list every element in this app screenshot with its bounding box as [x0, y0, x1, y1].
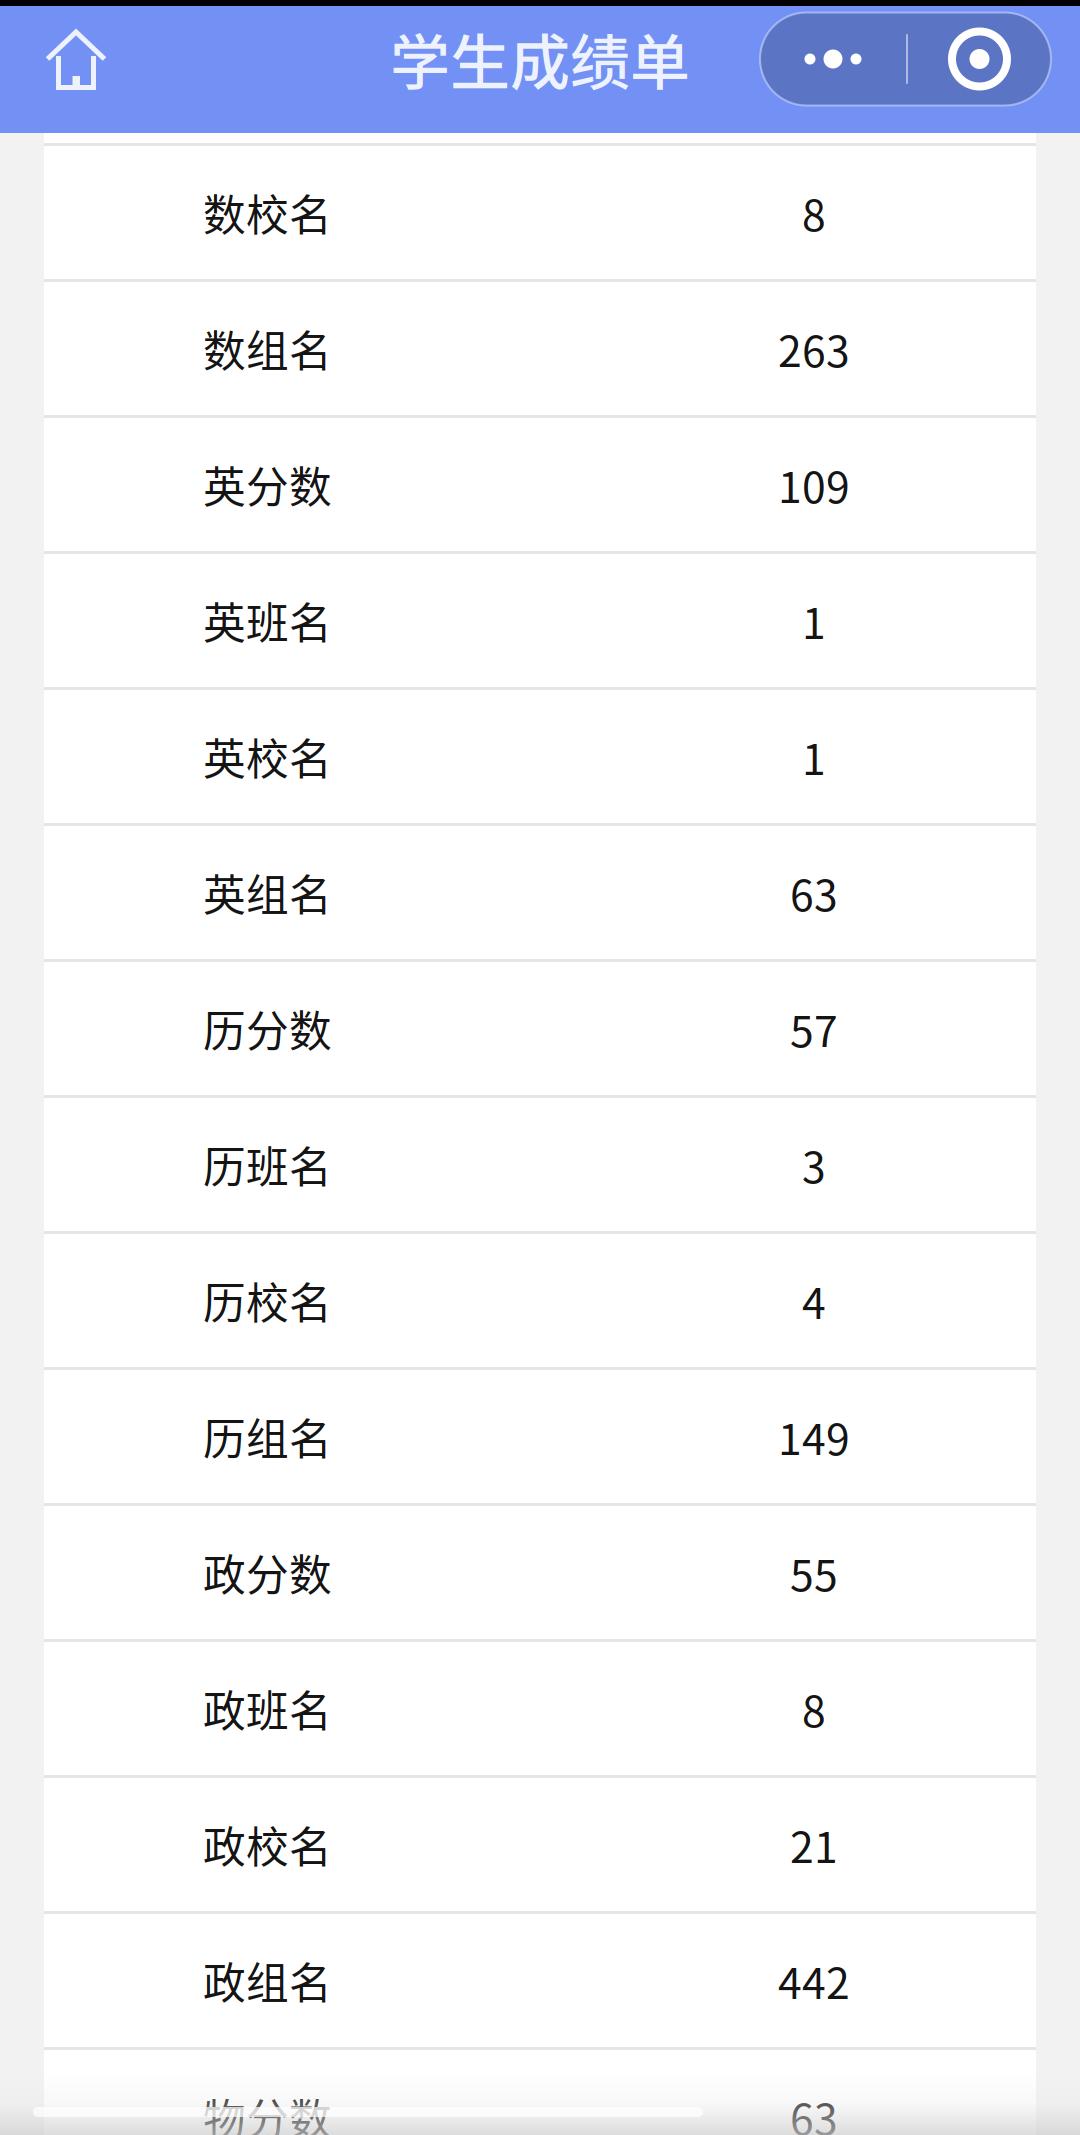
staticText: 英校名 — [203, 726, 332, 787]
staticText: 109 — [778, 454, 850, 515]
staticText: 263 — [778, 318, 850, 379]
button[interactable]: 政班名 — [44, 1642, 1036, 1775]
button[interactable]: 政分数 — [44, 1506, 1036, 1639]
button[interactable]: 数组名 — [44, 282, 1036, 415]
staticText: 学生成绩单 — [390, 15, 690, 102]
staticText: 历班名 — [203, 1134, 332, 1195]
staticText: 历组名 — [203, 1406, 332, 1467]
staticText: 数组名 — [203, 318, 332, 379]
staticText: 63 — [790, 862, 838, 923]
staticText: 149 — [778, 1406, 850, 1467]
staticText: 1 — [802, 726, 826, 787]
staticText: 4 — [802, 1270, 826, 1331]
button[interactable]: 政组名 — [44, 1914, 1036, 2047]
staticText: 数校名 — [203, 182, 332, 243]
button[interactable]: 数校名 — [44, 146, 1036, 279]
button[interactable]: More options — [760, 6, 1080, 133]
button[interactable]: 政校名 — [44, 1778, 1036, 1911]
button[interactable]: Home — [0, 6, 137, 133]
staticText: 8 — [802, 182, 826, 243]
staticText: 3 — [802, 1134, 826, 1195]
button[interactable]: 英班名 — [44, 554, 1036, 687]
staticText: 政校名 — [203, 1814, 332, 1875]
button[interactable]: 英分数 — [44, 418, 1036, 551]
staticText: 历分数 — [203, 998, 332, 1059]
staticText: 57 — [790, 998, 838, 1059]
staticText: 442 — [778, 1950, 850, 2011]
staticText: 63 — [790, 2086, 838, 2135]
staticText: 1 — [802, 590, 826, 651]
staticText: 政班名 — [203, 1678, 332, 1739]
staticText: 政分数 — [203, 1542, 332, 1603]
button[interactable]: 英校名 — [44, 690, 1036, 823]
staticText: 历校名 — [203, 1270, 332, 1331]
button[interactable]: 历校名 — [44, 1234, 1036, 1367]
button[interactable]: 英组名 — [44, 826, 1036, 959]
staticText: 55 — [790, 1542, 838, 1603]
button[interactable]: 物分数 — [44, 2050, 1036, 2135]
staticText: 物分数 — [203, 2086, 332, 2135]
button[interactable]: 历班名 — [44, 1098, 1036, 1231]
button[interactable]: 历组名 — [44, 1370, 1036, 1503]
staticText: 21 — [790, 1814, 838, 1875]
staticText: 8 — [802, 1678, 826, 1739]
staticText: 英组名 — [203, 862, 332, 923]
staticText: 政组名 — [203, 1950, 332, 2011]
staticText: 英班名 — [203, 590, 332, 651]
button[interactable]: 历分数 — [44, 962, 1036, 1095]
staticText: 英分数 — [203, 454, 332, 515]
